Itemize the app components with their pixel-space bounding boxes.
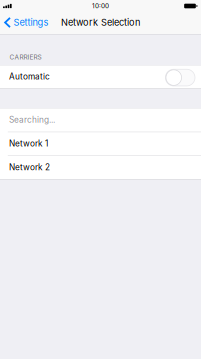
staticText: Network 2 [9,162,50,172]
button[interactable]: Network 1 [0,132,201,155]
button[interactable]: Searching... [0,108,201,132]
button[interactable]: Network 2 [0,156,201,179]
staticText: Automatic [9,72,50,82]
staticText: Network Selection [61,17,140,28]
staticText: Searching... [9,115,55,125]
staticText: Network 1 [9,138,48,148]
staticText: 10:00 [92,2,109,10]
staticText: CARRIERS [9,53,41,61]
staticText: Settings [14,17,49,28]
button[interactable]: Settings [0,12,52,32]
